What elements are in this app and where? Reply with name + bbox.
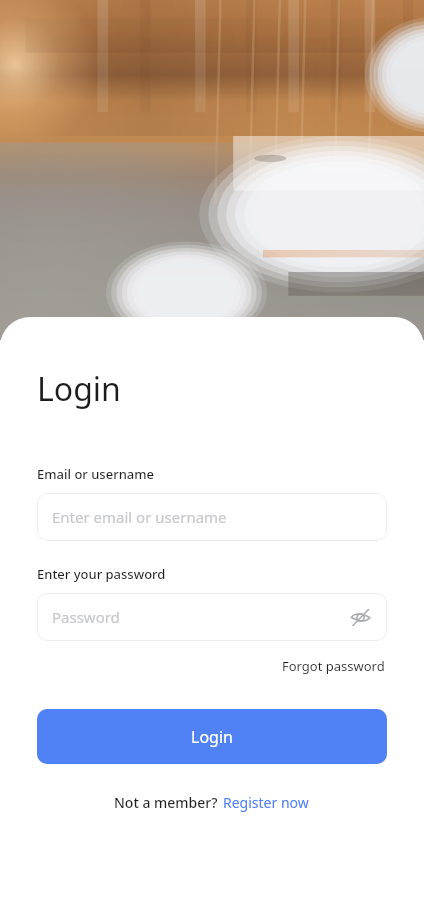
staticText: Forgot password — [282, 657, 385, 675]
button[interactable]: Show password — [343, 600, 377, 634]
staticText: Enter your password — [37, 565, 166, 583]
staticText: Login — [191, 726, 233, 748]
staticText: Enter email or username — [52, 507, 227, 527]
staticText: Login — [37, 367, 121, 411]
button[interactable]: Enter email or username — [37, 493, 387, 541]
staticText: Register now — [223, 793, 309, 812]
staticText: Not a member? — [114, 793, 222, 812]
staticText: Email or username — [37, 465, 155, 483]
staticText: Password — [52, 607, 120, 627]
button[interactable]: Password — [37, 593, 387, 641]
button[interactable]: Register now — [222, 791, 310, 814]
button[interactable]: Login — [37, 709, 387, 764]
button[interactable]: Forgot password — [280, 655, 387, 677]
